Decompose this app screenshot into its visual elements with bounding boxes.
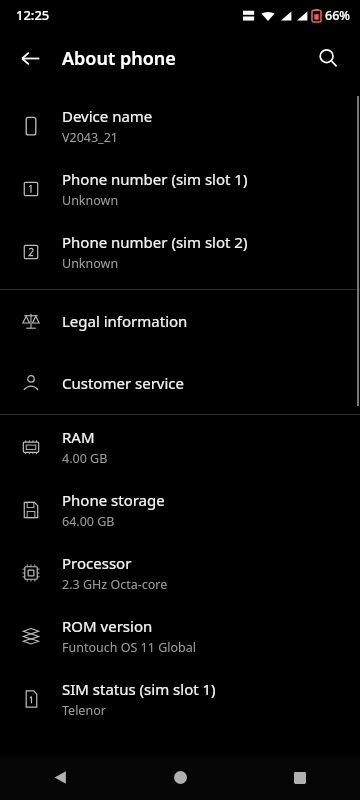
button[interactable]: Device name — [0, 94, 360, 157]
button[interactable]: ROM version — [0, 604, 360, 667]
button[interactable]: Phone storage — [0, 478, 360, 541]
button[interactable]: Back — [0, 755, 120, 800]
staticText: 4.00 GB — [62, 450, 108, 467]
staticText: Customer service — [62, 373, 184, 393]
button[interactable]: Processor — [0, 541, 360, 604]
button[interactable]: Search — [306, 36, 350, 80]
staticText: 64.00 GB — [62, 513, 115, 530]
button[interactable]: SIM status (sim slot 1) — [0, 667, 360, 730]
button[interactable]: Recents — [240, 755, 360, 800]
button[interactable]: Customer service — [0, 352, 360, 414]
button[interactable]: Home — [120, 755, 240, 800]
button[interactable]: Legal information — [0, 290, 360, 352]
staticText: Legal information — [62, 311, 188, 331]
button[interactable]: Back — [8, 36, 52, 80]
staticText: ROM version — [62, 616, 153, 636]
button[interactable]: Phone number (sim slot 1) — [0, 157, 360, 220]
staticText: V2043_21 — [62, 129, 118, 146]
staticText: Funtouch OS 11 Global — [62, 639, 196, 656]
staticText: About phone — [62, 46, 176, 71]
staticText: Phone storage — [62, 490, 165, 510]
staticText: Device name — [62, 106, 153, 126]
staticText: 2.3 GHz Octa-core — [62, 576, 168, 593]
staticText: RAM — [62, 427, 95, 447]
staticText: 66% — [325, 7, 350, 24]
staticText: Phone number (sim slot 1) — [62, 169, 248, 189]
staticText: Unknown — [62, 192, 119, 209]
button[interactable]: RAM — [0, 415, 360, 478]
staticText: SIM status (sim slot 1) — [62, 679, 216, 699]
staticText: Telenor — [62, 702, 106, 719]
staticText: 12:25 — [16, 6, 50, 24]
button[interactable]: Phone number (sim slot 2) — [0, 220, 360, 283]
staticText: Processor — [62, 553, 132, 573]
staticText: Phone number (sim slot 2) — [62, 232, 248, 252]
staticText: Unknown — [62, 255, 119, 272]
